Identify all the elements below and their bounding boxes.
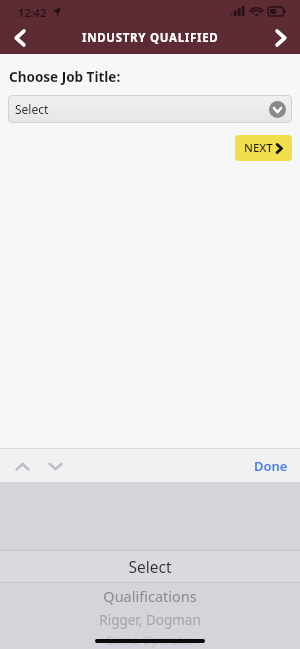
button[interactable]: Crane Operator [0,631,300,649]
staticText: INDUSTRY QUALIFIED [82,30,219,46]
staticText: Select [15,101,49,117]
staticText: Crane Operator [0,632,300,648]
button[interactable]: Next field [41,452,69,480]
staticText: 12:42 [18,5,47,20]
staticText: Done [254,457,288,475]
staticText: Select [0,556,300,577]
button[interactable]: Rigger, Dogman [0,609,300,631]
staticText: Qualifications [0,586,300,606]
button[interactable]: Select [0,551,300,582]
button[interactable]: Done [242,451,300,481]
button[interactable]: NEXT [235,135,292,161]
staticText: Choose Job Title: [9,68,121,86]
staticText: NEXT [244,140,273,156]
button[interactable]: Qualifications [0,583,300,609]
staticText: Rigger, Dogman [0,611,300,629]
button[interactable]: Select [8,95,292,123]
button[interactable]: Previous field [8,452,36,480]
button[interactable]: Forward [262,22,300,54]
button[interactable]: Back [0,22,38,54]
